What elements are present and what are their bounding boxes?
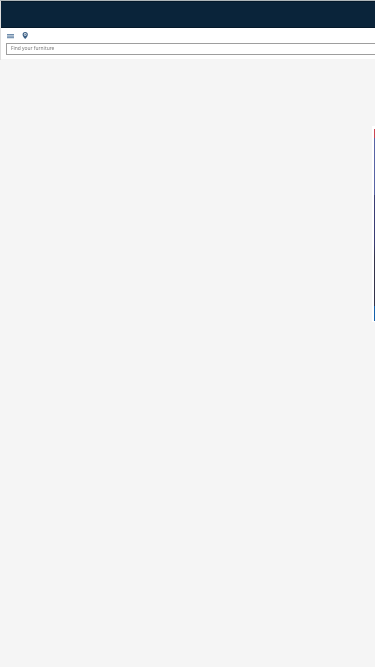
button[interactable]: Location (18, 28, 32, 42)
button[interactable]: Find your furniture (6, 43, 375, 55)
button[interactable]: Menu (1, 28, 19, 44)
staticText: Find your furniture (11, 45, 55, 52)
